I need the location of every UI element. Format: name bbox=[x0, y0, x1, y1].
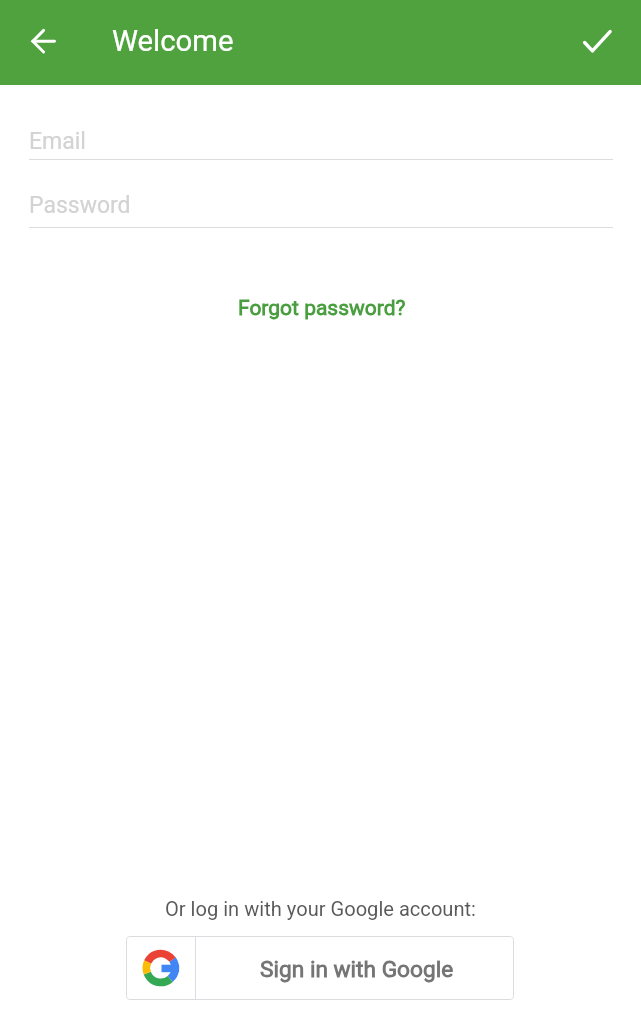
button[interactable]: Email bbox=[29, 100, 613, 160]
staticText: Forgot password? bbox=[238, 296, 406, 321]
staticText: Welcome bbox=[112, 24, 234, 58]
button[interactable]: Password bbox=[29, 164, 613, 228]
button[interactable]: Navigate back bbox=[20, 18, 67, 65]
button[interactable]: Done bbox=[578, 18, 625, 65]
staticText: Sign in with Google bbox=[260, 956, 454, 983]
button[interactable]: Forgot password? bbox=[226, 287, 416, 327]
button[interactable]: Sign in with Google bbox=[126, 936, 514, 1000]
staticText: Password bbox=[29, 192, 131, 219]
staticText: Email bbox=[29, 128, 86, 155]
staticText: Or log in with your Google account: bbox=[165, 897, 476, 921]
